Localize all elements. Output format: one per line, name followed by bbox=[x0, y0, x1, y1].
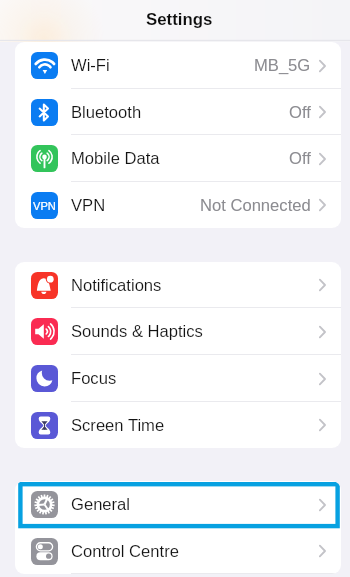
button[interactable]: Control Centre bbox=[15, 528, 341, 574]
staticText: Control Centre bbox=[71, 542, 179, 561]
staticText: VPN bbox=[33, 200, 56, 212]
button[interactable]: General bbox=[15, 481, 341, 528]
button[interactable]: VPN bbox=[15, 182, 341, 228]
button[interactable]: Bluetooth bbox=[15, 89, 341, 135]
button[interactable]: Notifications bbox=[15, 262, 341, 308]
staticText: Wi-Fi bbox=[71, 56, 110, 75]
button[interactable]: Sounds & Haptics bbox=[15, 308, 341, 355]
staticText: Not Connected bbox=[200, 196, 311, 215]
button[interactable]: Screen Time bbox=[15, 402, 341, 448]
staticText: VPN bbox=[71, 196, 106, 215]
staticText: Mobile Data bbox=[71, 149, 160, 168]
staticText: Sounds & Haptics bbox=[71, 322, 203, 341]
staticText: Off bbox=[289, 103, 311, 122]
staticText: Bluetooth bbox=[71, 103, 142, 122]
staticText: General bbox=[71, 495, 131, 514]
button[interactable]: Focus bbox=[15, 355, 341, 402]
staticText: Settings bbox=[146, 10, 213, 29]
staticText: Notifications bbox=[71, 276, 162, 295]
staticText: Screen Time bbox=[71, 416, 165, 435]
button[interactable]: Mobile Data bbox=[15, 135, 341, 182]
staticText: Off bbox=[289, 149, 311, 168]
button[interactable]: Wi-Fi bbox=[15, 42, 341, 89]
staticText: Focus bbox=[71, 369, 117, 388]
staticText: MB_5G bbox=[254, 56, 311, 75]
